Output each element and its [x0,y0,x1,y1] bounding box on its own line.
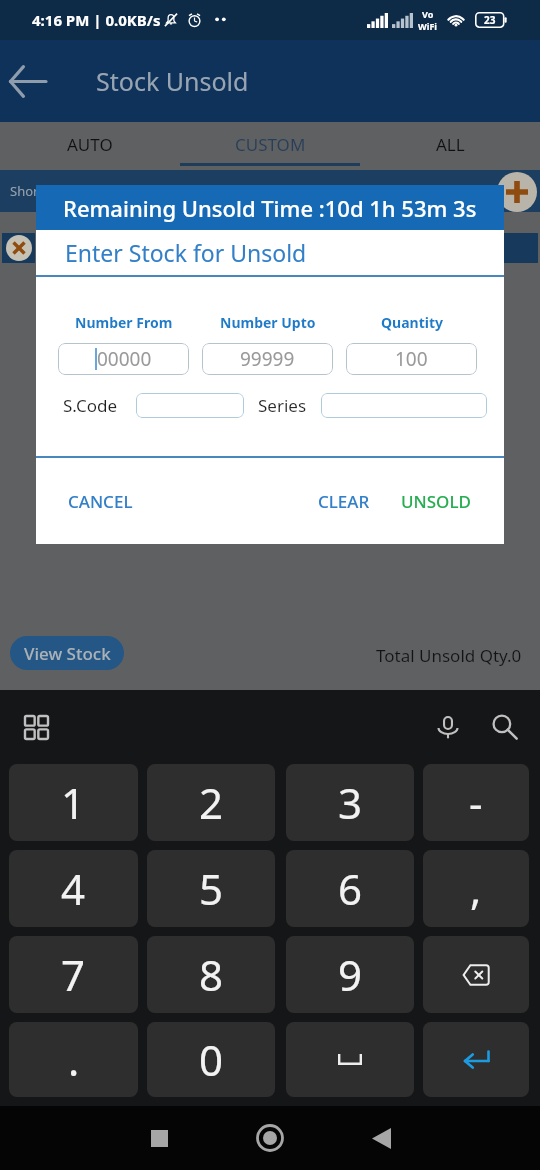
button[interactable]: Voice input [429,708,467,746]
button[interactable]: Back [2,55,54,107]
staticText: Series [258,394,307,417]
button[interactable]: 7 [9,936,138,1013]
staticText: , [470,860,482,917]
staticText: - [469,774,483,831]
staticText: 3 [338,774,363,831]
button[interactable]: Remove filter [2,233,35,263]
button[interactable]: , [423,850,529,927]
staticText: AUTO [67,133,113,156]
staticText: 00000 [97,346,152,372]
button[interactable]: Search [486,708,524,746]
button[interactable]: 6 [286,850,414,927]
staticText: WiFi [418,20,438,32]
staticText: 23 [484,13,496,27]
staticText: 4 [61,860,86,917]
staticText: UNSOLD [401,490,471,513]
button[interactable] [136,393,244,418]
button[interactable]: - [423,764,529,841]
button[interactable]: 1 [9,764,138,841]
staticText: CANCEL [68,490,133,513]
button[interactable]: Home [242,1110,298,1166]
button[interactable]: 100 [346,343,477,375]
staticText: 8 [199,946,224,1003]
staticText: View Stock [24,642,111,665]
staticText: Stock Unsold [96,64,249,98]
staticText: 2 [199,774,224,831]
staticText: Vo [422,8,434,20]
button[interactable]: 00000 [58,343,189,375]
button[interactable]: . [9,1022,138,1097]
other: Space [338,1054,362,1065]
button[interactable]: ALL [360,122,540,166]
button[interactable]: 5 [147,850,275,927]
staticText: Remaining Unsold Time :10d 1h 53m 3s [63,193,477,223]
button[interactable]: 0 [147,1022,275,1097]
staticText: Enter Stock for Unsold [65,237,307,268]
button[interactable]: CUSTOM [180,122,360,166]
staticText: S.Code [63,394,118,417]
button[interactable]: CANCEL [60,480,141,523]
button[interactable]: 4 [9,850,138,927]
staticText: 1 [61,774,86,831]
button[interactable]: 2 [147,764,275,841]
button[interactable]: View Stock [10,636,124,670]
staticText: . [68,1031,80,1088]
button[interactable]: CLEAR [310,480,378,523]
staticText: 100 [395,346,428,372]
other: Delete [462,964,490,986]
staticText: CUSTOM [235,133,306,156]
staticText: Number Upto [220,313,316,332]
staticText: Quantity [381,313,443,332]
button[interactable]: Add [497,172,537,212]
staticText: Short [10,182,44,200]
staticText: 6 [338,860,363,917]
button[interactable]: Recents [131,1110,187,1166]
button[interactable]: UNSOLD [393,480,479,523]
staticText: 7 [61,946,86,1003]
other: Enter [463,1050,490,1070]
button[interactable]: 8 [147,936,275,1013]
button[interactable]: 99999 [202,343,333,375]
button[interactable]: 3 [286,764,414,841]
staticText: 5 [199,860,224,917]
staticText: 99999 [240,346,295,372]
button[interactable] [321,393,487,418]
button[interactable]: AUTO [0,122,180,166]
button[interactable]: Enter [423,1022,529,1097]
staticText: 4:16 PM | 0.0KB/s [32,10,161,30]
button[interactable]: 9 [286,936,414,1013]
button[interactable]: Space [286,1022,414,1097]
staticText: Total Unsold Qty.0 [376,644,522,667]
button[interactable]: Switch keyboard [18,709,54,745]
staticText: Number From [75,313,173,332]
staticText: CLEAR [318,490,370,513]
staticText: 0 [199,1031,224,1088]
button[interactable]: Back [353,1110,409,1166]
button[interactable]: Delete [423,936,529,1013]
staticText: 9 [338,946,363,1003]
staticText: ALL [436,133,465,156]
